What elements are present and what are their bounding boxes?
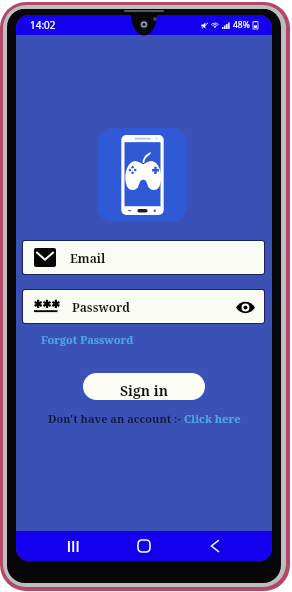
staticText: 14:02	[30, 18, 56, 32]
button[interactable]: Recent apps	[38, 531, 108, 561]
button[interactable]: Home	[108, 531, 179, 561]
button[interactable]: Password	[23, 290, 264, 323]
button[interactable]: Sign in	[83, 373, 205, 400]
button[interactable]: Back	[179, 531, 250, 561]
button[interactable]: Forgot Password	[41, 332, 134, 347]
staticText: 48%	[233, 19, 250, 31]
staticText: Sign in	[120, 381, 169, 400]
button[interactable]: Click here	[184, 411, 241, 426]
staticText: Don't have an account :-	[48, 411, 184, 426]
button[interactable]: Show password	[234, 296, 256, 318]
button[interactable]: Email	[23, 241, 264, 274]
staticText: Email	[70, 250, 106, 266]
staticText: Password	[72, 299, 131, 315]
